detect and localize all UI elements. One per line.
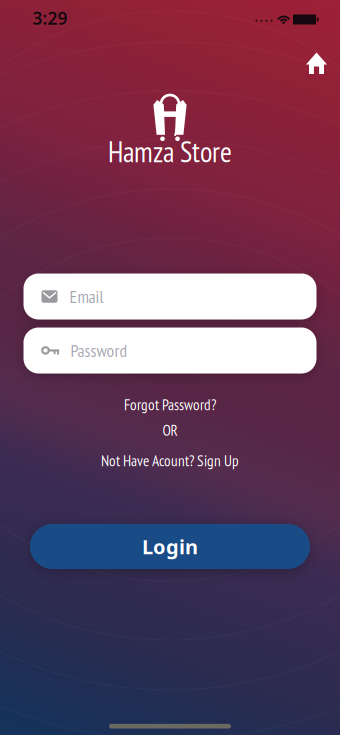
staticText: Hamza Store — [108, 133, 232, 170]
button[interactable]: Home — [302, 49, 330, 77]
staticText: Password — [70, 339, 127, 362]
staticText: Login — [142, 533, 198, 560]
staticText: OR — [162, 420, 177, 440]
button[interactable]: Not Have Acount? Sign Up — [101, 451, 239, 470]
button[interactable]: Forgot Password? — [124, 395, 216, 414]
button[interactable]: Login — [30, 524, 310, 569]
button[interactable]: Email — [23, 273, 316, 319]
staticText: Email — [69, 285, 103, 308]
button[interactable]: Password — [23, 327, 316, 373]
staticText: Not Have Acount? Sign Up — [101, 451, 239, 470]
staticText: 3:29 — [32, 6, 67, 29]
staticText: Forgot Password? — [124, 395, 216, 414]
